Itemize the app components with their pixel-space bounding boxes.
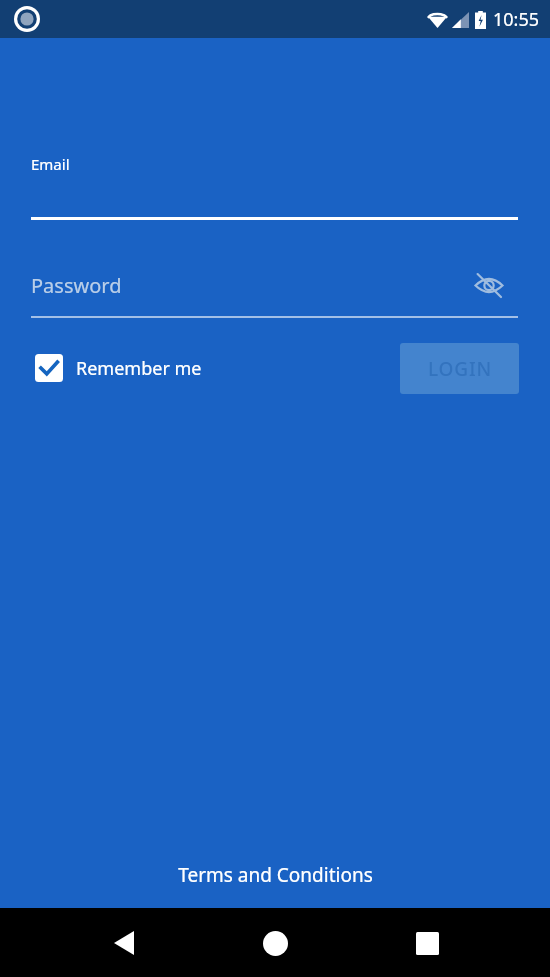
- staticText: LOGIN: [428, 356, 492, 382]
- button[interactable]: Terms and Conditions: [162, 856, 389, 894]
- staticText: Remember me: [76, 356, 202, 381]
- staticText: Terms and Conditions: [178, 862, 373, 888]
- button[interactable]: Show password: [466, 262, 512, 308]
- staticText: Email: [31, 154, 70, 174]
- button[interactable]: Recent apps: [399, 915, 455, 971]
- button[interactable]: Email: [0, 146, 550, 220]
- button[interactable]: Password: [31, 272, 122, 299]
- button[interactable]: LOGIN: [400, 343, 519, 394]
- button[interactable]: Back: [96, 915, 152, 971]
- staticText: 10:55: [493, 7, 540, 32]
- button[interactable]: Home: [247, 915, 303, 971]
- staticText: Password: [31, 272, 122, 299]
- button[interactable]: Remember me: [31, 350, 206, 386]
